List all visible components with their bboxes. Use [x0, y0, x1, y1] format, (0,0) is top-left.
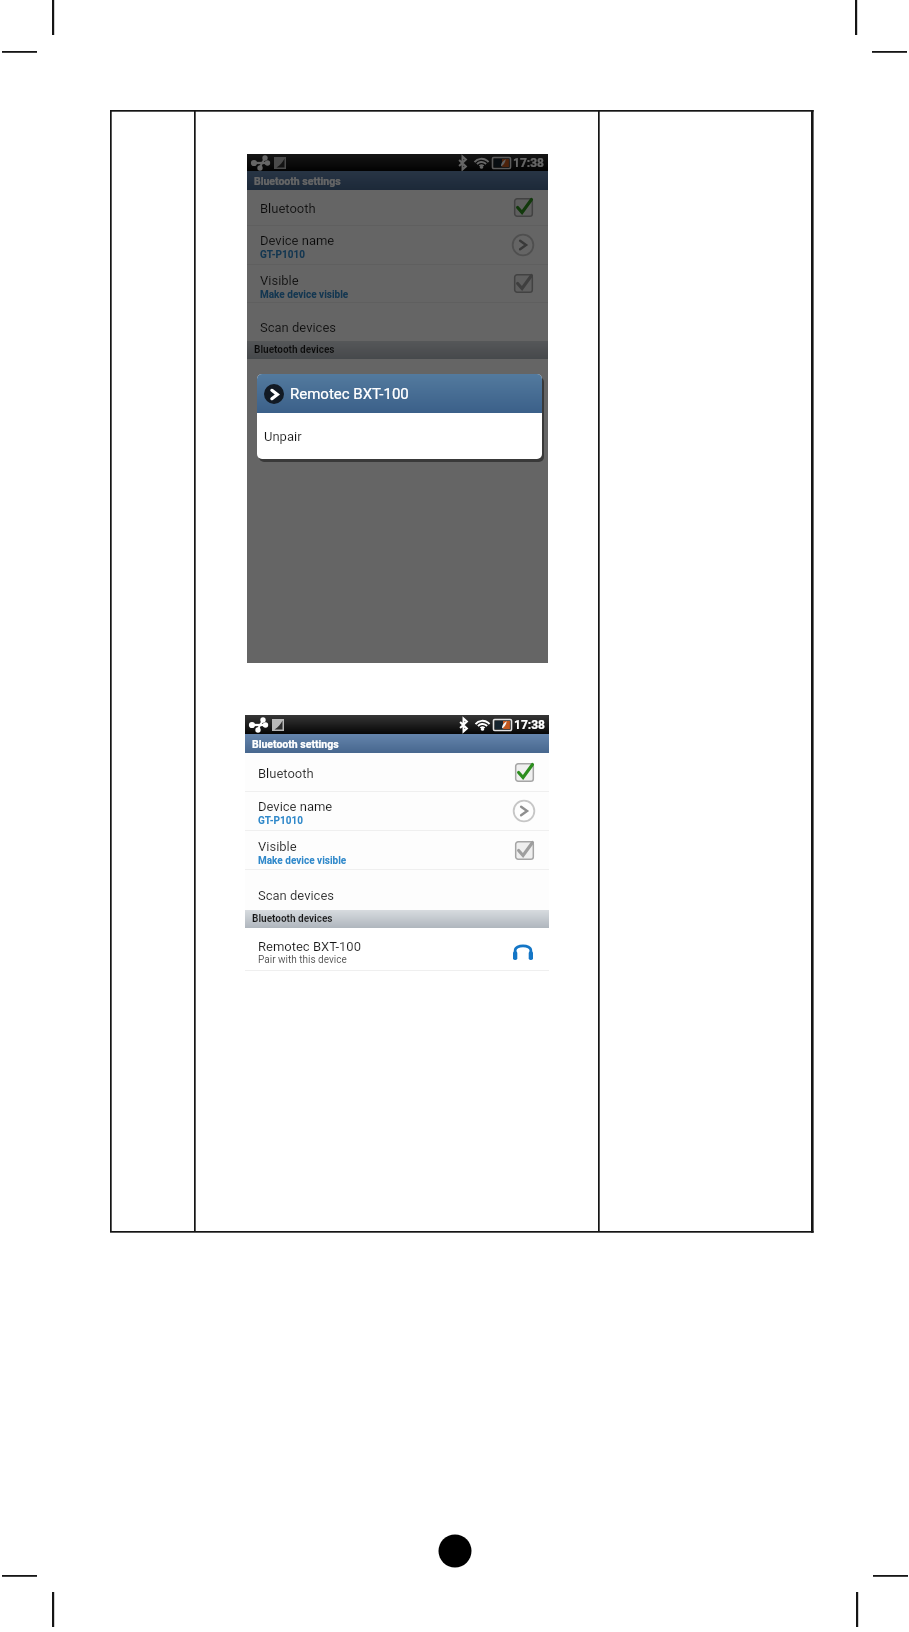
staticText: Bluetooth settings: [254, 175, 341, 187]
staticText: Pair with this device: [258, 954, 347, 966]
staticText: Scan devices: [260, 320, 337, 335]
button[interactable]: Device name: [247, 226, 548, 264]
button[interactable]: Bluetooth: [245, 753, 549, 791]
staticText: Remotec BXT-100: [258, 939, 361, 954]
button[interactable]: Bluetooth: [247, 190, 548, 225]
button[interactable]: Scan devices: [247, 303, 548, 341]
staticText: Bluetooth: [260, 201, 316, 216]
staticText: GT-P1010: [258, 815, 303, 827]
staticText: Visible: [260, 273, 299, 288]
button[interactable]: Scan devices: [245, 870, 549, 910]
staticText: Bluetooth: [258, 766, 314, 781]
staticText: Scan devices: [258, 888, 335, 903]
button[interactable]: Visible: [247, 265, 548, 302]
staticText: Device name: [260, 233, 335, 248]
staticText: Remotec BXT-100: [290, 385, 409, 403]
other: Headset device: [513, 944, 533, 960]
staticText: Bluetooth devices: [252, 913, 333, 925]
button[interactable]: Visible: [245, 831, 549, 869]
button[interactable]: Unpair: [257, 413, 542, 459]
staticText: Bluetooth settings: [252, 738, 339, 750]
staticText: Device name: [258, 799, 333, 814]
button[interactable]: Remotec BXT-100: [245, 928, 549, 970]
button[interactable]: Remotec BXT-100: [257, 374, 542, 413]
staticText: 17:38: [513, 156, 544, 170]
staticText: Bluetooth devices: [254, 344, 335, 356]
staticText: GT-P1010: [260, 249, 305, 261]
button[interactable]: Device name: [245, 792, 549, 830]
staticText: Make device visible: [258, 855, 347, 867]
staticText: Visible: [258, 839, 297, 854]
staticText: Make device visible: [260, 289, 349, 301]
staticText: Unpair: [264, 429, 302, 444]
staticText: 17:38: [514, 718, 545, 732]
